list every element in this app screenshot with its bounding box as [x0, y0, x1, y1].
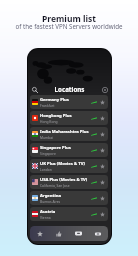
button[interactable]: Favorite: [99, 99, 106, 106]
staticText: Singapore Plus: [40, 145, 71, 151]
staticText: London: [40, 167, 52, 171]
button[interactable]: Recommended: [49, 226, 68, 241]
button[interactable]: Servers: [68, 226, 88, 241]
button[interactable]: India Maharashtra Plus: [30, 127, 108, 141]
staticText: Frankfurt: [40, 103, 55, 107]
staticText: Austria: [40, 209, 56, 215]
staticText: Vienna: [40, 215, 51, 219]
staticText: Hong Kong: [40, 119, 58, 123]
button[interactable]: Favorite: [99, 115, 106, 122]
staticText: Argentina: [40, 193, 61, 199]
button[interactable]: Germany Plus: [30, 95, 108, 109]
button[interactable]: Favorites: [30, 226, 49, 241]
button[interactable]: USA Plus (Movies & TV): [30, 175, 108, 189]
staticText: Mumbai: [40, 135, 53, 139]
staticText: Premium list: [0, 13, 138, 25]
button[interactable]: Account: [88, 226, 108, 241]
button[interactable]: Austria: [30, 207, 108, 221]
button[interactable]: Hongkong Plus: [30, 111, 108, 125]
button[interactable]: Argentina: [30, 191, 108, 205]
button[interactable]: Favorite: [99, 179, 106, 186]
staticText: Buenos Aires: [40, 199, 61, 203]
button[interactable]: Favorite: [99, 147, 106, 154]
staticText: California, San Jose: [40, 183, 70, 187]
staticText: Hongkong Plus: [40, 113, 72, 119]
staticText: USA Plus (Movies & TV): [40, 177, 88, 183]
staticText: of the fastest VPN Servers worldwide: [0, 22, 138, 30]
button[interactable]: Settings: [100, 85, 109, 94]
button[interactable]: Favorite: [99, 195, 106, 202]
staticText: Locations: [39, 85, 100, 93]
button[interactable]: Search: [30, 85, 39, 94]
button[interactable]: Favorite: [99, 163, 106, 170]
button[interactable]: Favorite: [99, 131, 106, 138]
staticText: Singapore: [40, 151, 56, 155]
staticText: Germany Plus: [40, 97, 69, 103]
button[interactable]: Favorite: [99, 211, 106, 218]
staticText: UK Plus (Movies & TV): [40, 161, 85, 167]
button[interactable]: UK Plus (Movies & TV): [30, 159, 108, 173]
button[interactable]: Singapore Plus: [30, 143, 108, 157]
staticText: India Maharashtra Plus: [40, 129, 89, 135]
